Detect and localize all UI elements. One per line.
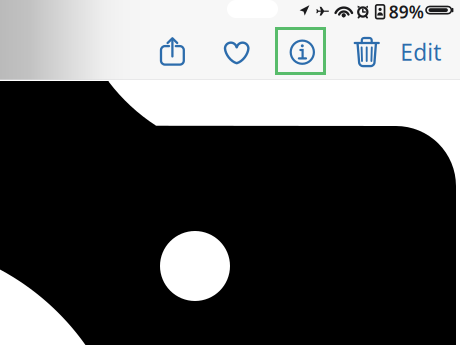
staticText: 89% [389, 0, 424, 23]
button[interactable]: Edit [396, 30, 446, 74]
staticText: Edit [400, 37, 441, 67]
